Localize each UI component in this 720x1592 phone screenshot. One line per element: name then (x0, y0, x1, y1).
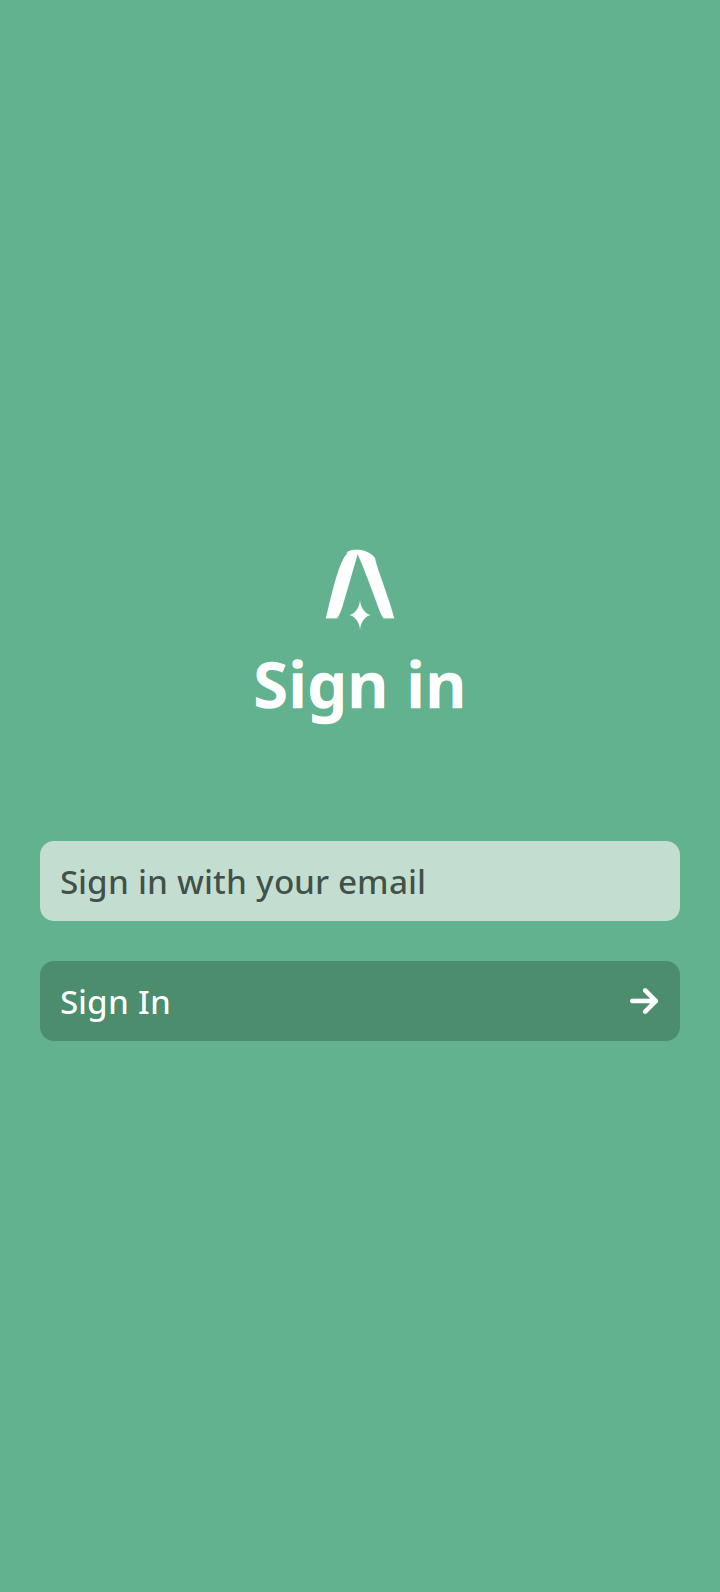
staticText: Sign in (253, 641, 467, 726)
staticText: Sign In (60, 979, 171, 1023)
button[interactable]: Sign In (40, 961, 680, 1041)
button[interactable]: Sign in with your email (40, 841, 680, 921)
staticText: Sign in with your email (60, 859, 426, 903)
